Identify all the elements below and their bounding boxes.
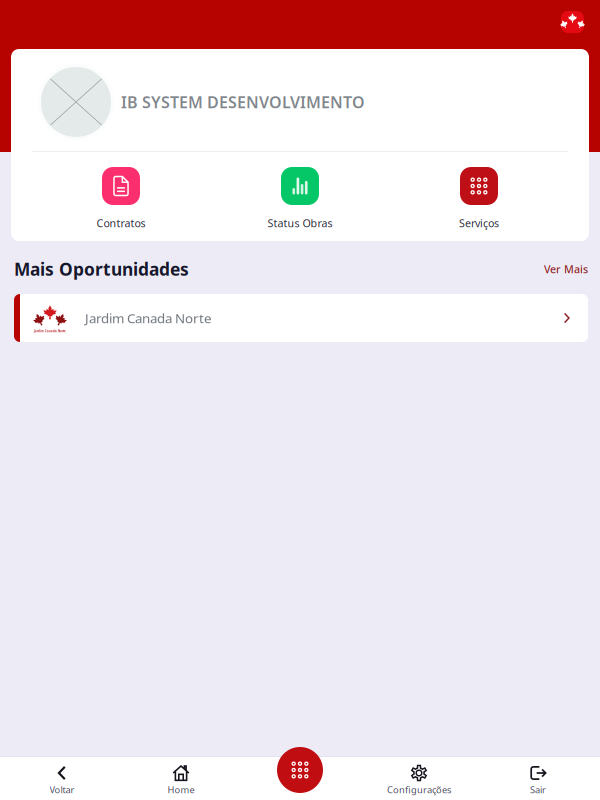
staticText: Jardim Canada Norte [85, 309, 212, 327]
button[interactable]: Serviços [389, 152, 568, 237]
staticText: Sair [530, 783, 546, 796]
button[interactable]: Serviços [277, 747, 323, 793]
staticText: Ver Mais [544, 262, 588, 276]
staticText: Configurações [387, 783, 451, 796]
staticText: Jardim Canada Norte [34, 329, 66, 333]
button[interactable]: Voltar [0, 756, 124, 800]
button[interactable]: Contratos [31, 152, 210, 237]
button[interactable]: Status Obras [210, 152, 389, 237]
button[interactable]: Ver Mais [544, 262, 588, 276]
staticText: Voltar [49, 783, 74, 796]
button[interactable]: Perfil [561, 11, 584, 33]
staticText: Home [167, 783, 194, 796]
staticText: IB SYSTEM DESENVOLVIMENTO [121, 91, 365, 113]
button[interactable]: Sair [476, 756, 600, 800]
staticText: Contratos [96, 216, 145, 230]
staticText: Serviços [459, 216, 499, 230]
staticText: Mais Oportunidades [14, 257, 189, 280]
button[interactable]: Jardim Canada Norte [14, 294, 588, 342]
button[interactable]: Home [124, 756, 238, 800]
button[interactable]: Configurações [362, 756, 476, 800]
staticText: Status Obras [267, 216, 332, 230]
